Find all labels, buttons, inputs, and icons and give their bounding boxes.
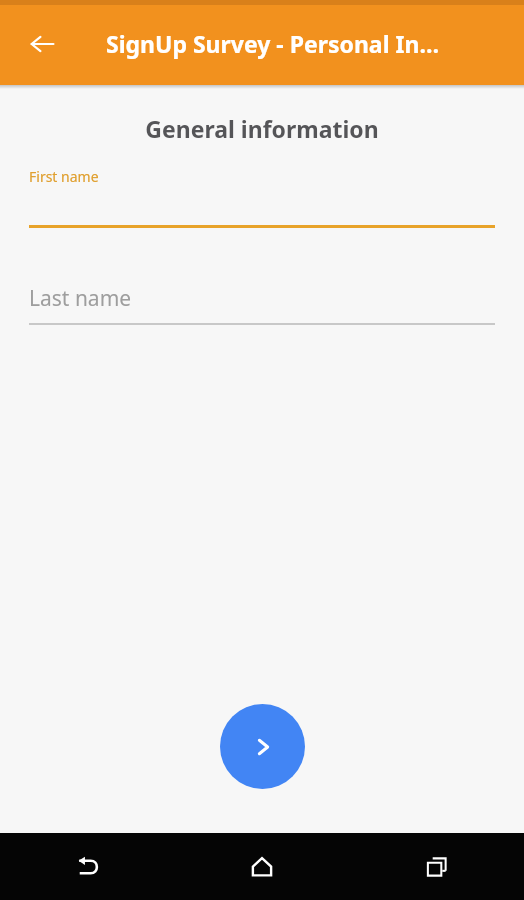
staticText: General information xyxy=(0,113,524,144)
button[interactable]: Navigate up xyxy=(18,20,66,68)
button[interactable]: First name xyxy=(29,167,495,228)
button[interactable]: Last name xyxy=(29,284,495,325)
staticText: SignUp Survey - Personal In… xyxy=(106,28,440,59)
button[interactable]: Next xyxy=(220,704,305,789)
button[interactable]: Recent apps xyxy=(349,833,524,900)
staticText: Last name xyxy=(29,284,132,313)
button[interactable]: Back xyxy=(0,833,174,900)
staticText: First name xyxy=(29,167,99,186)
button[interactable]: Home xyxy=(174,833,349,900)
